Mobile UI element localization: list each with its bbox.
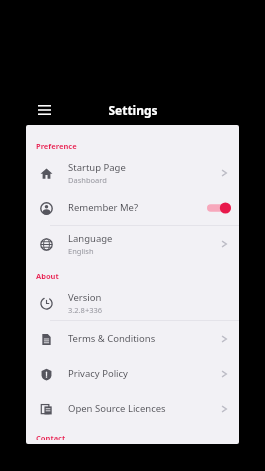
button[interactable]: Remember Me? xyxy=(26,190,239,225)
button[interactable]: Version xyxy=(26,285,239,320)
staticText: Settings xyxy=(108,102,158,118)
button[interactable]: Open navigation menu xyxy=(33,99,55,121)
button[interactable]: Remember Me toggle, on xyxy=(207,201,231,215)
button[interactable]: Privacy Policy xyxy=(26,356,239,391)
staticText: Remember Me? xyxy=(68,201,139,214)
staticText: 3.2.8+336 xyxy=(68,305,103,315)
staticText: Startup Page xyxy=(68,161,126,174)
staticText: Open Source Licences xyxy=(68,402,166,415)
staticText: Dashboard xyxy=(68,175,107,185)
staticText: Language xyxy=(68,232,113,245)
staticText: Preference xyxy=(36,141,77,151)
staticText: Terms & Conditions xyxy=(68,332,156,345)
staticText: About xyxy=(36,271,59,281)
button[interactable]: Startup Page xyxy=(26,155,239,190)
button[interactable]: Terms & Conditions xyxy=(26,321,239,356)
staticText: Version xyxy=(68,291,102,304)
staticText: Contact xyxy=(36,433,66,440)
staticText: English xyxy=(68,246,94,256)
button[interactable]: Open Source Licences xyxy=(26,391,239,426)
button[interactable]: Language xyxy=(26,226,239,261)
staticText: Privacy Policy xyxy=(68,367,128,380)
